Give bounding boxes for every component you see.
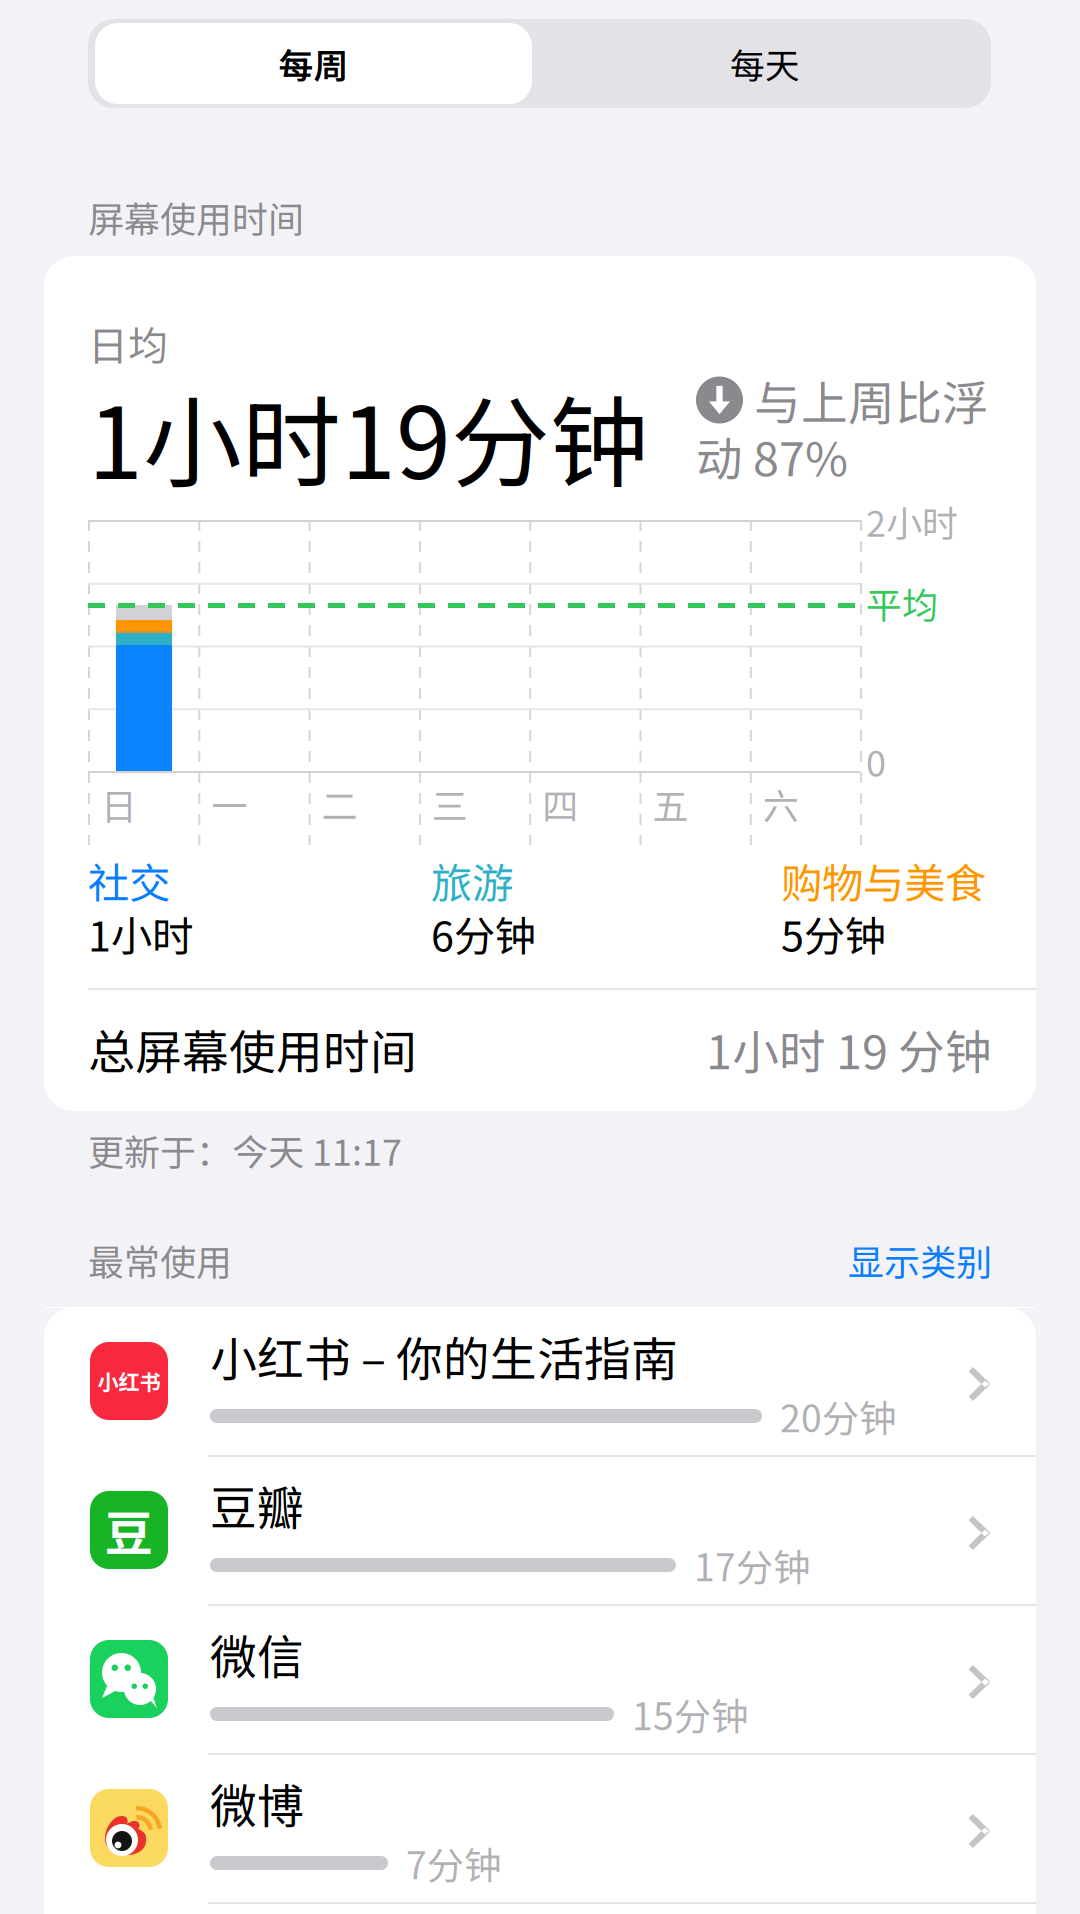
staticText: 1小时19分钟: [88, 365, 649, 507]
staticText: 6分钟: [431, 904, 536, 963]
staticText: 与上周比浮: [754, 366, 989, 434]
staticText: 旅游: [431, 851, 513, 910]
staticText: 四: [542, 778, 578, 830]
staticText: 六: [763, 778, 799, 830]
staticText: 总屏幕使用时间: [88, 1015, 417, 1083]
button[interactable]: 每天: [539, 19, 991, 108]
staticText: 1小时 19 分钟: [706, 1015, 992, 1083]
staticText: 五: [652, 778, 688, 830]
staticText: 屏幕使用时间: [88, 191, 304, 243]
button[interactable]: 总屏幕使用时间: [44, 990, 1036, 1111]
staticText: 5分钟: [781, 904, 886, 963]
button[interactable]: 豆: [44, 1457, 1036, 1606]
staticText: 一: [211, 778, 247, 830]
staticText: 17分钟: [694, 1538, 810, 1592]
staticText: 三: [432, 778, 468, 830]
staticText: 7分钟: [406, 1836, 501, 1890]
staticText: 20分钟: [780, 1389, 896, 1443]
button[interactable]: 微博: [44, 1755, 1036, 1904]
staticText: 日: [101, 778, 137, 830]
staticText: 更新于：今天 11:17: [88, 1124, 402, 1176]
staticText: 小红书 – 你的生活指南: [210, 1322, 678, 1390]
staticText: 豆瓣: [210, 1471, 304, 1539]
staticText: 显示类别: [848, 1234, 992, 1286]
staticText: 社交: [88, 851, 170, 910]
staticText: 购物与美食: [781, 851, 986, 910]
staticText: 最常使用: [88, 1234, 232, 1286]
staticText: 豆: [105, 1495, 153, 1565]
button[interactable]: 小红书: [44, 1308, 1036, 1457]
button[interactable]: 每周: [88, 19, 539, 108]
staticText: 小红书: [97, 1366, 160, 1396]
staticText: 微博: [210, 1769, 304, 1837]
staticText: 每天: [730, 38, 800, 89]
staticText: 15分钟: [632, 1687, 748, 1741]
staticText: 二: [322, 778, 358, 830]
staticText: 微信: [210, 1620, 304, 1688]
staticText: 动 87%: [696, 422, 848, 490]
staticText: 日均: [88, 314, 168, 372]
staticText: 1小时: [88, 904, 193, 963]
button[interactable]: 显示类别: [848, 1234, 992, 1286]
button[interactable]: 微信: [44, 1606, 1036, 1755]
staticText: 每周: [278, 38, 348, 89]
staticText: 0: [866, 735, 886, 787]
staticText: 2小时: [866, 495, 958, 547]
staticText: 平均: [866, 577, 938, 629]
